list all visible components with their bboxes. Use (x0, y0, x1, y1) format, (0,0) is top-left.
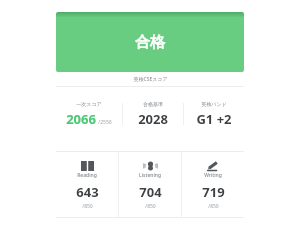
staticText: 643 (76, 183, 99, 201)
staticText: 一次スコア (76, 101, 102, 107)
staticText: /850 (82, 203, 93, 210)
button[interactable]: Reading (56, 152, 118, 217)
staticText: 704 (139, 183, 162, 201)
other: Writing (205, 160, 221, 171)
staticText: Writing (204, 172, 222, 179)
staticText: /850 (145, 203, 156, 210)
staticText: Listening (139, 172, 161, 179)
button[interactable]: Writing (182, 152, 244, 217)
staticText: G1 +2 (196, 110, 232, 128)
button[interactable]: 合格基準 (123, 98, 183, 130)
staticText: 英検バンド (201, 101, 227, 107)
button[interactable]: 合格 (56, 12, 244, 72)
staticText: 英検CSEスコア (133, 76, 168, 83)
staticText: /2550 (98, 119, 112, 126)
button[interactable]: 一次スコア (56, 98, 122, 130)
staticText: 2066 (66, 110, 96, 128)
staticText: 合格 (135, 33, 165, 52)
other: Listening (142, 160, 158, 171)
other: Reading (79, 160, 95, 171)
staticText: /850 (208, 203, 219, 210)
button[interactable]: 英検バンド (184, 98, 244, 130)
button[interactable]: Listening (119, 152, 181, 217)
staticText: 合格基準 (143, 101, 163, 107)
staticText: 719 (202, 183, 225, 201)
staticText: 2028 (138, 110, 168, 128)
staticText: Reading (77, 172, 97, 179)
